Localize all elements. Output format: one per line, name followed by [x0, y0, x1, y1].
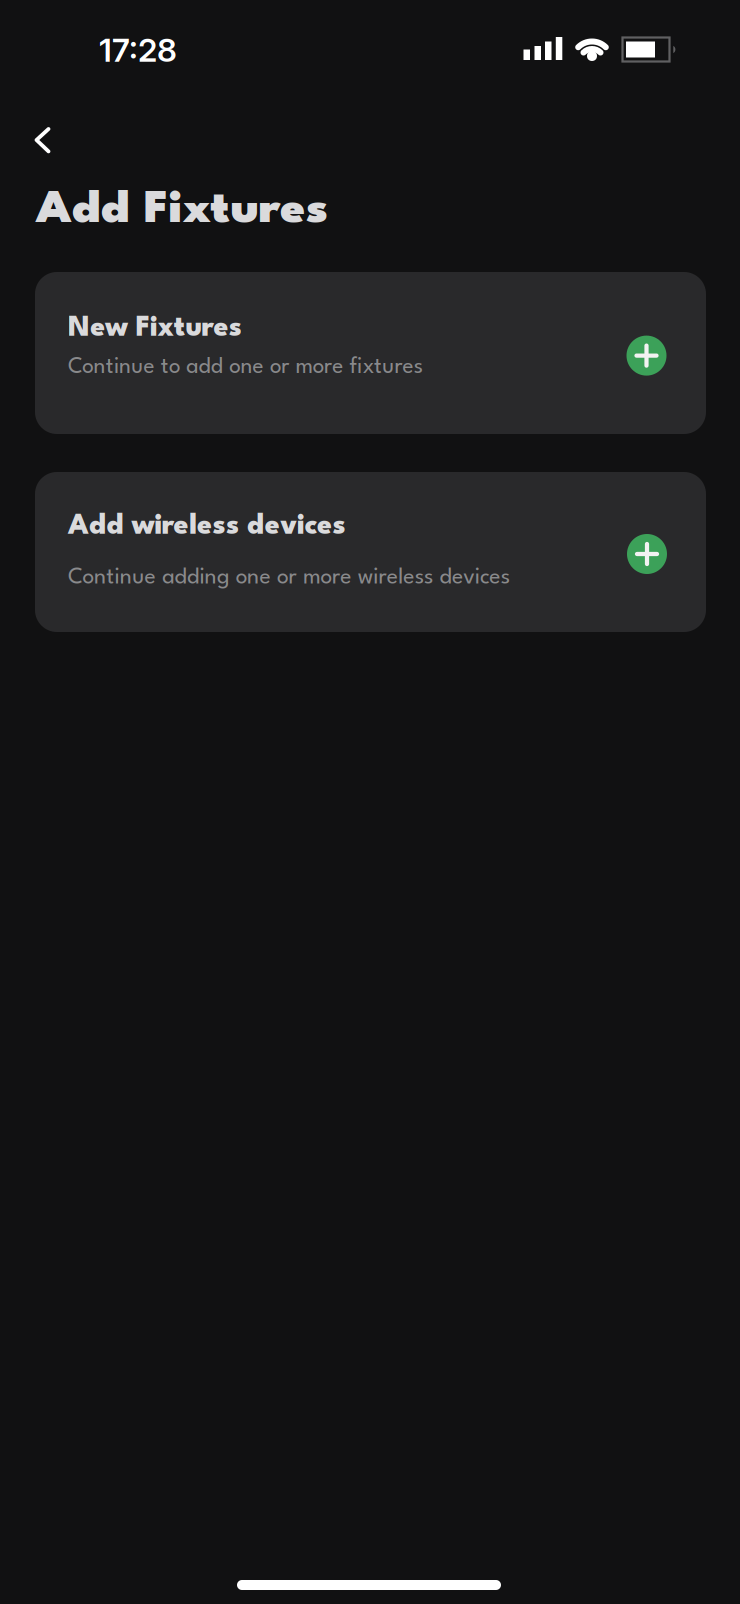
staticText: New Fixtures [68, 314, 249, 343]
button[interactable] [627, 534, 667, 574]
button[interactable]: Add wireless devices [35, 472, 706, 632]
staticText: Continue adding one or more wireless dev… [68, 568, 495, 588]
staticText: 17:28 [99, 31, 177, 69]
button[interactable] [6, 115, 82, 165]
button[interactable] [626, 336, 666, 376]
staticText: Add Fixtures [36, 188, 319, 233]
staticText: Add wireless devices [68, 512, 355, 541]
button[interactable]: New Fixtures [35, 272, 706, 434]
staticText: Continue to add one or more fixtures [68, 357, 416, 378]
